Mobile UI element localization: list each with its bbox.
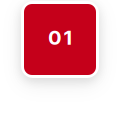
staticText: 01 [48,25,72,50]
button[interactable]: 01 [21,1,99,78]
